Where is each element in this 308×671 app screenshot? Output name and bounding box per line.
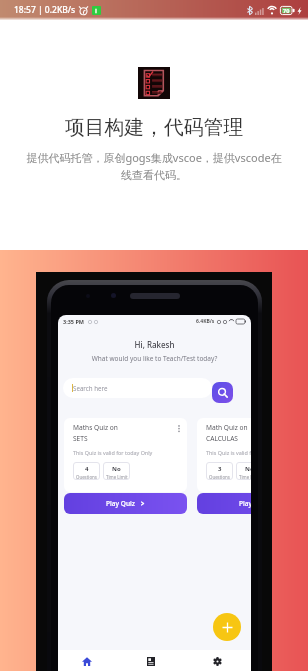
button[interactable]: Library <box>119 650 183 671</box>
staticText: Play Quiz <box>239 499 251 508</box>
staticText: 项目构建，代码管理 <box>0 115 308 140</box>
staticText: Questions <box>209 474 230 480</box>
button[interactable]: Search here <box>63 378 212 398</box>
button[interactable]: Add new quiz <box>213 613 241 641</box>
button[interactable]: Search <box>212 382 233 403</box>
staticText: SETS <box>73 434 88 443</box>
button[interactable]: Play Quiz <box>64 493 187 514</box>
staticText: 3 <box>218 465 222 473</box>
staticText: 提供代码托管，原创gogs集成vscoe，提供vscode在 线查看代码。 <box>0 150 308 183</box>
staticText: Questions <box>76 474 97 480</box>
staticText: Hi, Rakesh <box>58 339 251 350</box>
staticText: Maths Quiz on <box>73 423 118 432</box>
staticText: 4 <box>85 465 89 473</box>
staticText: No <box>245 465 251 473</box>
button[interactable]: Maths Quiz on <box>64 418 187 492</box>
staticText: Search here <box>73 384 108 392</box>
staticText: Time Limit <box>239 474 251 480</box>
button[interactable]: Math Quiz on <box>197 418 251 492</box>
button[interactable]: Home <box>58 650 119 671</box>
staticText: 70 <box>283 7 290 14</box>
staticText: Play Quiz <box>106 499 135 508</box>
staticText: 18:57 | 0.2KB/s <box>14 4 76 16</box>
staticText: Math Quiz on <box>206 423 248 432</box>
staticText: No <box>112 465 121 473</box>
staticText: CALCULAS <box>206 434 238 443</box>
staticText: This Quiz is valid for today Only <box>73 449 153 456</box>
button[interactable]: Play Quiz <box>197 493 251 514</box>
staticText: What would you like to Teach/Test today? <box>58 354 251 363</box>
staticText: Time Limit <box>106 474 128 480</box>
staticText: 6.4KB/s <box>196 318 215 325</box>
staticText: 3:35 PM <box>63 318 85 325</box>
staticText: This Quiz is valid for today Only <box>206 449 251 456</box>
button[interactable]: Settings <box>185 650 249 671</box>
